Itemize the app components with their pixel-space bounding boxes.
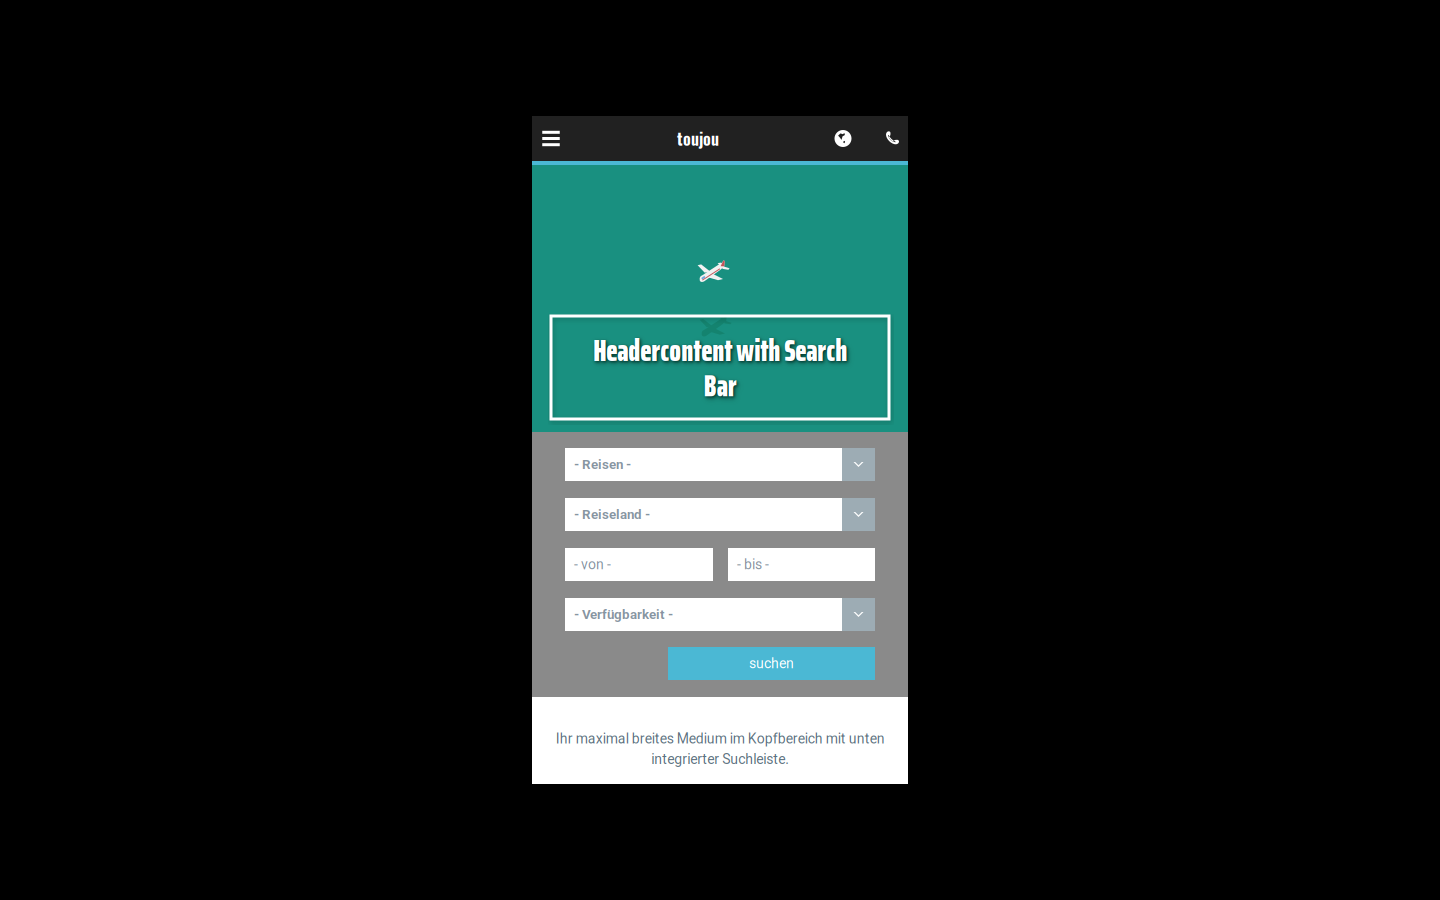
button[interactable]: Call us [877,116,907,161]
staticText: - Verfügbarkeit - [574,607,673,622]
button[interactable]: - Reisen - [565,448,875,481]
staticText: - Reisen - [574,457,631,472]
button[interactable]: - Verfügbarkeit - [565,598,875,631]
staticText: - bis - [737,556,769,573]
staticText: Headercontent with Search Bar [593,327,847,409]
button[interactable]: - von - [565,548,713,581]
staticText: - Reiseland - [574,507,650,522]
button[interactable]: suchen [668,647,875,680]
button[interactable]: - bis - [728,548,875,581]
staticText: toujou [677,127,719,150]
staticText: suchen [749,655,794,672]
button[interactable]: Open menu [532,116,570,161]
staticText: - von - [574,556,611,573]
staticText: Ihr maximal breites Medium im Kopfbereic… [555,731,884,767]
button[interactable]: Change language [828,116,858,161]
button[interactable]: - Reiseland - [565,498,875,531]
